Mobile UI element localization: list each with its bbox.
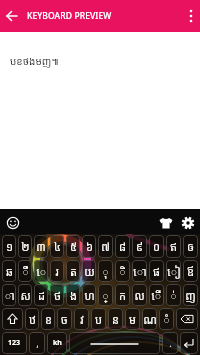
button[interactable]: ប xyxy=(91,308,106,330)
staticText: ោ xyxy=(133,264,147,279)
button[interactable]: ៦ xyxy=(82,235,96,258)
button[interactable]: ល xyxy=(132,284,147,306)
button[interactable]: ា xyxy=(2,284,16,306)
staticText: ៀ xyxy=(167,264,181,279)
button[interactable]: ០ xyxy=(149,235,164,258)
button[interactable]: េ xyxy=(34,260,48,282)
staticText: ១ xyxy=(6,239,13,254)
button[interactable]: ក xyxy=(115,284,130,306)
staticText: ង xyxy=(70,288,77,303)
button[interactable]: ត xyxy=(66,260,80,282)
staticText: ញ xyxy=(185,288,196,303)
button[interactable]: ឪ xyxy=(183,260,198,282)
staticText: ឥ xyxy=(170,239,177,254)
button[interactable]: ៣ xyxy=(34,235,48,258)
button[interactable]: យ xyxy=(82,260,96,282)
button[interactable] xyxy=(180,332,198,354)
button[interactable]: ឋ xyxy=(25,308,39,330)
button[interactable] xyxy=(69,332,160,354)
staticText: បខថងមញ៕ xyxy=(10,54,59,68)
staticText: រ xyxy=(55,264,59,279)
staticText: ខ xyxy=(45,312,52,327)
staticText: ណ xyxy=(143,312,157,327)
button[interactable]: ខ xyxy=(41,308,55,330)
staticText: ៨ xyxy=(119,239,126,254)
staticText: ថ xyxy=(54,288,61,303)
button[interactable] xyxy=(176,308,198,330)
button[interactable] xyxy=(176,209,200,234)
staticText: ៥ xyxy=(70,239,77,254)
button[interactable]: ដ xyxy=(34,284,48,306)
staticText: ហ xyxy=(84,288,95,303)
staticText: ់ xyxy=(170,288,177,303)
button[interactable]: ន xyxy=(108,308,123,330)
button[interactable]: ុ xyxy=(98,260,113,282)
button[interactable]: ើ xyxy=(149,284,164,306)
button[interactable]: រ xyxy=(50,260,64,282)
button[interactable]: វ xyxy=(74,308,89,330)
button[interactable]: ឹ xyxy=(18,260,32,282)
button[interactable]: ញ xyxy=(183,284,198,306)
button[interactable]: ំ xyxy=(159,308,174,330)
staticText: ឋ xyxy=(29,312,36,327)
staticText: ា xyxy=(4,288,15,303)
staticText: ប xyxy=(95,312,102,327)
staticText: ល xyxy=(134,288,145,303)
button[interactable] xyxy=(2,308,23,330)
staticText: . xyxy=(169,338,172,349)
button[interactable]: ឆ xyxy=(2,260,16,282)
staticText: ិ xyxy=(119,264,126,279)
staticText: េ xyxy=(36,264,47,279)
staticText: ៧ xyxy=(101,239,110,254)
button[interactable]: ៨ xyxy=(115,235,130,258)
staticText: ដ xyxy=(38,288,45,303)
button[interactable] xyxy=(0,4,24,28)
staticText: ឲ xyxy=(187,239,194,254)
staticText: KEYBOARD PREVIEW xyxy=(27,10,112,22)
staticText: ំ xyxy=(163,312,170,327)
staticText: ស xyxy=(20,288,31,303)
button[interactable]: ច xyxy=(57,308,72,330)
staticText: ឆ xyxy=(6,264,13,279)
button[interactable]: ឲ xyxy=(183,235,198,258)
button[interactable]: kh xyxy=(47,332,67,354)
button[interactable]: ោ xyxy=(132,260,147,282)
staticText: វ xyxy=(80,312,84,327)
button[interactable]: 123 xyxy=(2,332,27,354)
button[interactable]: . xyxy=(162,332,178,354)
button[interactable]: , xyxy=(29,332,45,354)
staticText: ៦ xyxy=(86,239,93,254)
button[interactable]: ស xyxy=(18,284,32,306)
button[interactable]: ង xyxy=(66,284,80,306)
button[interactable] xyxy=(182,7,200,25)
button[interactable]: ់ xyxy=(166,284,181,306)
staticText: ៩ xyxy=(136,239,143,254)
button[interactable]: ២ xyxy=(18,235,32,258)
staticText: ឪ xyxy=(187,264,194,279)
button[interactable]: ៧ xyxy=(98,235,113,258)
button[interactable]: ិ xyxy=(115,260,130,282)
button[interactable]: ថ xyxy=(50,284,64,306)
button[interactable]: ណ xyxy=(142,308,157,330)
button[interactable]: ១ xyxy=(2,235,16,258)
staticText: ន xyxy=(112,312,119,327)
button[interactable]: ៀ xyxy=(166,260,181,282)
button[interactable]: ផ xyxy=(149,260,164,282)
button[interactable] xyxy=(0,209,25,234)
staticText: ២ xyxy=(21,239,30,254)
staticText: ៣ xyxy=(36,239,46,254)
button[interactable]: ហ xyxy=(82,284,96,306)
staticText: ុ xyxy=(102,264,109,279)
button[interactable] xyxy=(156,209,176,234)
button[interactable]: ្ xyxy=(98,284,113,306)
button[interactable]: ៤ xyxy=(50,235,64,258)
staticText: ក xyxy=(119,288,126,303)
button[interactable]: ៥ xyxy=(66,235,80,258)
button[interactable]: ៩ xyxy=(132,235,147,258)
staticText: , xyxy=(36,338,39,349)
staticText: ្ xyxy=(102,288,109,303)
button[interactable]: ឥ xyxy=(166,235,181,258)
button[interactable]: ម xyxy=(125,308,140,330)
staticText: យ xyxy=(84,264,95,279)
staticText: ម xyxy=(129,312,136,327)
